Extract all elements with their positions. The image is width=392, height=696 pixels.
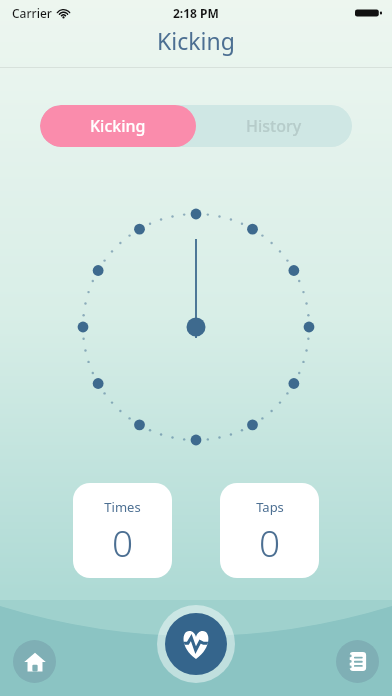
staticText: Kicking: [90, 115, 146, 137]
button[interactable]: Taps: [220, 483, 319, 578]
staticText: Carrier: [12, 5, 52, 21]
staticText: Kicking: [157, 25, 235, 56]
staticText: History: [246, 115, 302, 137]
button[interactable]: Home: [13, 640, 56, 683]
button[interactable]: Times: [73, 483, 172, 578]
button[interactable]: Record kick: [157, 605, 235, 683]
staticText: Times: [104, 498, 141, 516]
staticText: 0: [259, 517, 281, 567]
button[interactable]: History: [196, 105, 352, 147]
button[interactable]: Records: [336, 640, 379, 683]
staticText: 0: [112, 517, 134, 567]
button[interactable]: Kicking: [40, 105, 196, 147]
staticText: 2:18 PM: [173, 5, 219, 21]
staticText: Taps: [256, 498, 284, 516]
